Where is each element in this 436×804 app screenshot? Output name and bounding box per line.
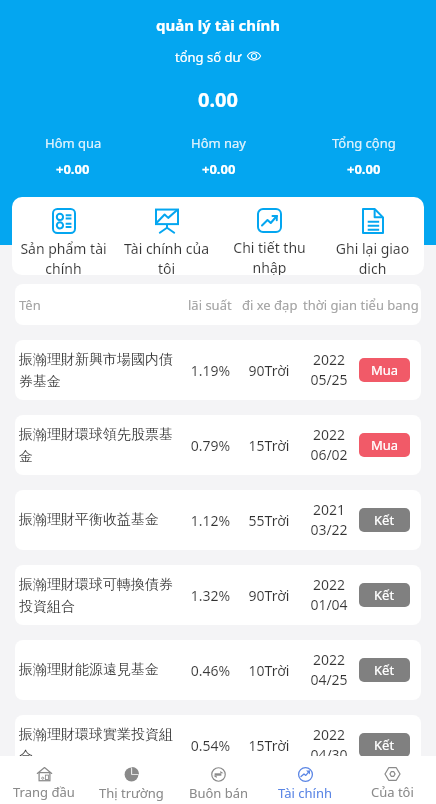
staticText: 振瀚理財能源遠見基金	[19, 661, 179, 679]
button[interactable]: Profile	[349, 756, 436, 804]
staticText: 2022 04/25	[297, 650, 361, 690]
staticText: 1.19%	[180, 361, 241, 380]
staticText: 10Trời	[241, 661, 297, 680]
staticText: 0.00	[0, 86, 436, 113]
staticText: Tài chính của tôi	[121, 239, 212, 275]
staticText: +0.00	[56, 160, 90, 178]
staticText: thời gian tiểu bang	[303, 296, 419, 314]
staticText: 1.32%	[180, 586, 241, 605]
staticText: đi xe đạp	[242, 296, 298, 314]
staticText: 15Trời	[241, 436, 297, 455]
staticText: 15Trời	[241, 736, 297, 755]
staticText: Kết	[374, 661, 395, 679]
button[interactable]: Kết	[359, 733, 410, 757]
staticText: Của tôi	[371, 783, 414, 801]
button[interactable]: Trade	[175, 756, 262, 804]
button[interactable]: 振瀚理財環球領先股票基金	[15, 415, 421, 475]
staticText: 2021 03/22	[297, 500, 361, 540]
staticText: +0.00	[202, 160, 236, 178]
staticText: 2022 04/30	[297, 725, 361, 765]
staticText: 振瀚理財環球實業投資組合	[19, 726, 179, 765]
button[interactable]: 振瀚理財平衡收益基金	[15, 490, 421, 550]
staticText: 0.46%	[180, 661, 241, 680]
staticText: Tên	[19, 296, 41, 314]
other: Finance	[298, 767, 313, 782]
staticText: 0.54%	[180, 736, 241, 755]
staticText: Chi tiết thu nhập	[224, 238, 315, 275]
staticText: 1.12%	[180, 511, 241, 530]
staticText: Hôm nay	[191, 134, 246, 152]
other: Toggle balance visibility	[247, 50, 261, 62]
staticText: Tổng cộng	[332, 134, 396, 152]
staticText: +0.00	[347, 160, 381, 178]
staticText: Hôm qua	[45, 134, 102, 152]
button[interactable]: Kết	[359, 508, 410, 532]
staticText: Mua	[371, 436, 399, 454]
staticText: Tài chính	[278, 784, 333, 802]
staticText: 55Trời	[241, 511, 297, 530]
other: Market	[124, 767, 139, 782]
button[interactable]: 振瀚理財能源遠見基金	[15, 640, 421, 700]
staticText: 2022 06/02	[297, 425, 361, 465]
staticText: 0.79%	[180, 436, 241, 455]
button[interactable]: Kết	[359, 658, 410, 682]
staticText: Sản phẩm tài chính	[18, 239, 109, 275]
staticText: 振瀚理財平衡收益基金	[19, 511, 179, 529]
staticText: 90Trời	[241, 586, 297, 605]
button[interactable]: 振瀚理財環球實業投資組合	[15, 715, 421, 775]
staticText: Ghi lại giao dịch	[327, 239, 418, 275]
staticText: tổng số dư	[175, 48, 242, 66]
staticText: 2022 05/25	[297, 350, 361, 390]
staticText: 2022 01/04	[297, 575, 361, 615]
button[interactable]: Sản phẩm tài chính	[12, 208, 115, 275]
other: Trade	[211, 767, 226, 782]
button[interactable]: Mua	[359, 358, 410, 382]
button[interactable]: Chi tiết thu nhập	[218, 208, 321, 275]
staticText: 90Trời	[241, 361, 297, 380]
staticText: Thị trường	[99, 784, 164, 802]
staticText: Trang đầu	[13, 783, 75, 801]
button[interactable]: 振瀚理財新興市場國内債券基金	[15, 340, 421, 400]
button[interactable]: Tài chính của tôi	[115, 208, 218, 275]
button[interactable]: Market	[88, 756, 175, 804]
button[interactable]: Home	[0, 756, 88, 804]
staticText: 振瀚理財環球領先股票基金	[19, 426, 179, 465]
staticText: Kết	[374, 736, 395, 754]
staticText: Kết	[374, 511, 395, 529]
staticText: lãi suất	[188, 296, 232, 314]
button[interactable]: Mua	[359, 433, 410, 457]
staticText: 振瀚理財環球可轉換債券投資組合	[19, 576, 179, 615]
staticText: Mua	[371, 361, 399, 379]
button[interactable]: 振瀚理財環球可轉換債券投資組合	[15, 565, 421, 625]
button[interactable]: Finance	[262, 756, 349, 804]
other: Profile	[385, 767, 400, 781]
button[interactable]: Ghi lại giao dịch	[321, 208, 424, 275]
staticText: Buôn bán	[189, 784, 249, 802]
staticText: Kết	[374, 586, 395, 604]
staticText: 振瀚理財新興市場國内債券基金	[19, 351, 179, 390]
button[interactable]: Kết	[359, 583, 410, 607]
staticText: quản lý tài chính	[0, 15, 436, 35]
other: Home	[37, 767, 52, 781]
